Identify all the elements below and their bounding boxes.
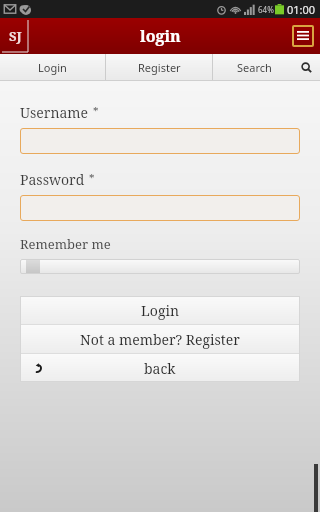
button[interactable]: Text input [20, 195, 300, 221]
staticText: * [89, 170, 95, 185]
button[interactable]: Not a member? Register [20, 325, 300, 353]
staticText: Not a member? Register [80, 330, 240, 349]
button[interactable]: Login [20, 296, 300, 324]
staticText: SJ [9, 27, 22, 45]
staticText: Search [237, 60, 272, 75]
staticText: * [93, 103, 99, 118]
staticText: Register [138, 60, 181, 75]
button[interactable]: Remember me toggle [20, 259, 300, 274]
staticText: login [140, 25, 181, 47]
staticText: Login [141, 301, 179, 320]
staticText: Login [38, 60, 67, 75]
button[interactable]: Login [0, 54, 105, 81]
staticText: Password [20, 170, 85, 189]
button[interactable]: back [20, 354, 300, 382]
staticText: 64% [258, 4, 274, 15]
staticText: 01:00 [287, 2, 316, 17]
button[interactable]: Home [0, 18, 30, 54]
button[interactable]: Register [106, 54, 212, 81]
button[interactable]: Text input [20, 128, 300, 154]
button[interactable]: Search [213, 54, 320, 81]
staticText: Username [20, 103, 89, 122]
button[interactable]: Menu [292, 25, 314, 47]
staticText: Remember me [20, 235, 111, 253]
staticText: back [144, 359, 176, 378]
